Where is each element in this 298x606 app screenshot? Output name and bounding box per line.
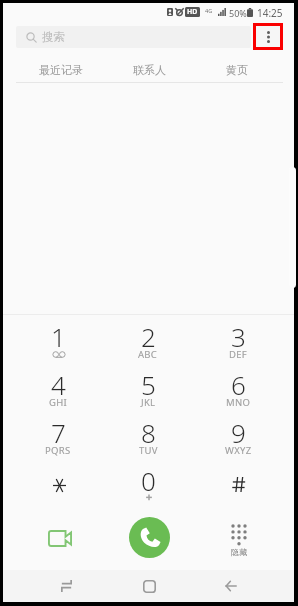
staticText: 2	[141, 319, 156, 354]
button[interactable]: Video call	[13, 504, 103, 564]
staticText: 5	[141, 367, 156, 402]
staticText: HD	[187, 7, 198, 17]
staticText: 黄页	[226, 63, 248, 77]
staticText: TUV	[139, 444, 158, 457]
button[interactable]: Home	[108, 570, 190, 602]
staticText: MNO	[226, 396, 251, 409]
button[interactable]: Recents	[25, 570, 108, 602]
staticText: 8	[141, 415, 156, 450]
button[interactable]: 0	[103, 456, 193, 504]
staticText: 0	[141, 463, 156, 498]
staticText: 4G	[205, 7, 213, 14]
button[interactable]: Pound	[193, 456, 283, 504]
button[interactable]: 黄页	[193, 58, 281, 82]
button[interactable]: 9	[193, 408, 283, 456]
staticText: 6	[231, 367, 246, 402]
staticText: 50%	[229, 7, 247, 19]
button[interactable]: 搜索	[16, 26, 251, 48]
button[interactable]: Back	[190, 570, 272, 602]
button[interactable]: 4	[13, 360, 103, 408]
staticText: 14:25	[257, 6, 283, 20]
staticText: 9	[231, 415, 246, 450]
staticText: 搜索	[42, 30, 65, 44]
button[interactable]: 3	[193, 312, 283, 360]
staticText: 最近记录	[39, 63, 83, 77]
button[interactable]: 8	[103, 408, 193, 456]
staticText: 联系人	[133, 63, 166, 77]
button[interactable]: 7	[13, 408, 103, 456]
button[interactable]: Call	[103, 504, 193, 564]
button[interactable]: 2	[103, 312, 193, 360]
staticText: DEF	[229, 348, 248, 361]
button[interactable]: 5	[103, 360, 193, 408]
staticText: ABC	[138, 348, 158, 361]
button[interactable]: 1	[13, 312, 103, 360]
button[interactable]: More options	[256, 26, 280, 47]
button[interactable]: Star	[13, 456, 103, 504]
staticText: 隐藏	[231, 547, 247, 557]
button[interactable]: 最近记录	[16, 58, 105, 82]
staticText: WXYZ	[225, 444, 252, 457]
staticText: 3	[231, 319, 246, 354]
staticText: 7	[51, 415, 66, 450]
button[interactable]: 6	[193, 360, 283, 408]
staticText: PQRS	[45, 444, 71, 457]
button[interactable]: 联系人	[105, 58, 193, 82]
staticText: 1	[51, 319, 66, 354]
button[interactable]: Hide keypad	[193, 504, 283, 564]
staticText: 4	[51, 367, 66, 402]
staticText: JKL	[141, 396, 156, 409]
staticText: GHI	[49, 396, 68, 409]
